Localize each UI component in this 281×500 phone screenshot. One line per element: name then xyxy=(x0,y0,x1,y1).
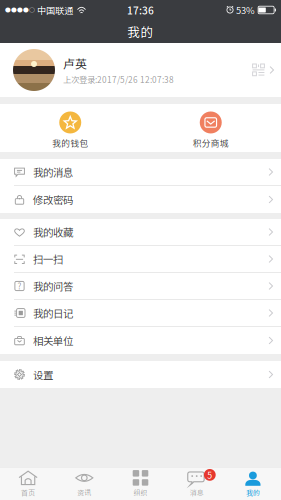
button[interactable]: 我的 xyxy=(225,467,281,500)
staticText: 相关单位 xyxy=(33,333,73,348)
button[interactable]: 扫一扫 xyxy=(0,246,281,273)
staticText: 我的 xyxy=(246,488,260,498)
button[interactable]: 首页 xyxy=(0,467,56,500)
staticText: 5 xyxy=(207,468,212,481)
staticText: 组织 xyxy=(133,488,147,498)
button[interactable]: 设置 xyxy=(0,361,281,388)
button[interactable]: 我的日记 xyxy=(0,300,281,327)
staticText: ●●●● xyxy=(5,6,29,14)
staticText: 我的消息 xyxy=(33,164,73,180)
staticText: 扫一扫 xyxy=(33,251,63,267)
button[interactable]: 5 xyxy=(169,467,225,500)
staticText: 中国联通 xyxy=(35,3,73,17)
staticText: ○ xyxy=(29,6,35,14)
staticText: 首页 xyxy=(21,488,35,498)
button[interactable]: 卢英 xyxy=(0,43,281,97)
staticText: 消息 xyxy=(190,488,204,498)
staticText: 卢英 xyxy=(63,55,87,72)
staticText: 17:36 xyxy=(127,3,154,17)
staticText: 我的钱包 xyxy=(52,136,88,149)
button[interactable]: 我的消息 xyxy=(0,159,281,186)
button[interactable]: 我的钱包 xyxy=(0,104,140,152)
button[interactable]: ? xyxy=(0,273,281,300)
button[interactable]: 资讯 xyxy=(56,467,112,500)
staticText: 我的日记 xyxy=(33,305,73,321)
button[interactable]: 组织 xyxy=(112,467,169,500)
staticText: 53% xyxy=(236,3,255,17)
staticText: 我的收藏 xyxy=(33,224,73,240)
staticText: 上次登录:2017/5/26 12:07:38 xyxy=(63,73,174,85)
button[interactable]: 相关单位 xyxy=(0,327,281,354)
staticText: 我的问答 xyxy=(33,278,73,294)
staticText: 设置 xyxy=(33,367,53,382)
staticText: 我的 xyxy=(127,22,153,40)
button[interactable]: 积分商城 xyxy=(140,104,281,152)
button[interactable]: 我的收藏 xyxy=(0,219,281,246)
staticText: 积分商城 xyxy=(193,136,229,149)
staticText: ? xyxy=(17,280,21,292)
button[interactable]: 修改密码 xyxy=(0,186,281,213)
staticText: 资讯 xyxy=(77,488,91,498)
staticText: 修改密码 xyxy=(33,192,73,207)
